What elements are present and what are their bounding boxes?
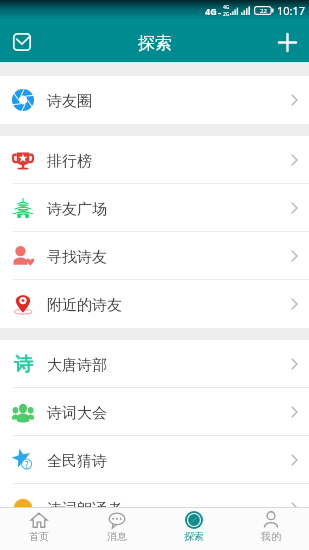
button[interactable]: ? <box>0 436 309 484</box>
staticText: 诗友广场 <box>47 200 107 219</box>
button[interactable]: 诗友圈 <box>0 76 309 124</box>
staticText: 诗词大会 <box>47 404 107 423</box>
staticText: 探索 <box>138 33 172 54</box>
button[interactable]: 诗友广场 <box>0 184 309 232</box>
button[interactable]: 消息 <box>78 508 155 550</box>
staticText: 诗友圈 <box>47 92 92 111</box>
button[interactable]: Messages <box>5 25 39 59</box>
staticText: 22 <box>260 7 267 15</box>
staticText: 2G <box>223 11 230 18</box>
staticText: 4G <box>205 5 217 17</box>
staticText: 诗 <box>14 353 33 375</box>
button[interactable]: 排行榜 <box>0 136 309 184</box>
staticText: ? <box>25 459 29 470</box>
button[interactable]: 诗词大会 <box>0 388 309 436</box>
button[interactable]: 附近的诗友 <box>0 280 309 328</box>
button[interactable]: 我的 <box>232 508 309 550</box>
staticText: 首页 <box>29 530 49 543</box>
button[interactable]: 诗词朗诵者 <box>0 484 309 507</box>
button[interactable]: 寻找诗友 <box>0 232 309 280</box>
staticText: 全民猜诗 <box>47 452 107 471</box>
button[interactable]: 探索 <box>155 508 232 550</box>
staticText: 探索 <box>184 530 204 543</box>
staticText: 附近的诗友 <box>47 296 122 315</box>
staticText: 排行榜 <box>47 152 92 171</box>
staticText: 寻找诗友 <box>47 248 107 267</box>
staticText: 大唐诗部 <box>47 356 107 375</box>
button[interactable]: Add <box>270 25 304 59</box>
staticText: 我的 <box>261 530 281 543</box>
staticText: 消息 <box>107 530 127 543</box>
staticText: 4G <box>223 4 230 11</box>
button[interactable]: 诗 <box>0 340 309 388</box>
staticText: 诗词朗诵者 <box>47 500 122 507</box>
staticText: 10:17 <box>277 3 306 18</box>
button[interactable]: 首页 <box>0 508 78 550</box>
